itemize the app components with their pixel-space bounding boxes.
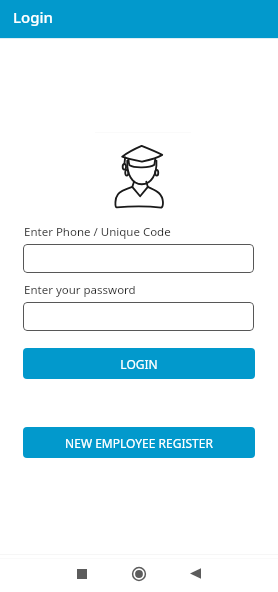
button[interactable]: Back	[178, 556, 213, 591]
button[interactable]	[23, 302, 254, 331]
button[interactable]	[23, 244, 254, 273]
button[interactable]: NEW EMPLOYEE REGISTER	[23, 427, 255, 458]
staticText: Enter Phone / Unique Code	[24, 224, 171, 240]
button[interactable]: LOGIN	[23, 348, 255, 379]
staticText: Login	[13, 7, 53, 27]
staticText: LOGIN	[120, 356, 158, 372]
staticText: NEW EMPLOYEE REGISTER	[65, 435, 213, 451]
button[interactable]: Home	[121, 556, 156, 591]
button[interactable]: Recent apps	[64, 556, 99, 591]
staticText: Enter your password	[24, 282, 136, 298]
